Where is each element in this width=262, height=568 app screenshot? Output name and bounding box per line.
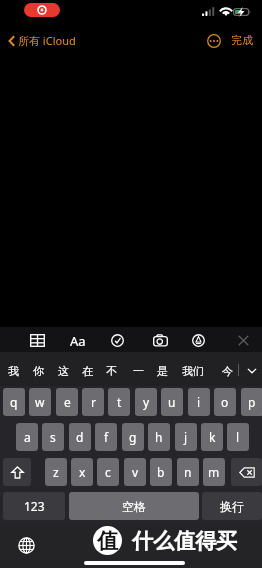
button[interactable]: Markup: [185, 329, 211, 352]
button[interactable]: t: [108, 388, 130, 416]
staticText: r: [91, 394, 96, 410]
staticText: 今: [222, 364, 233, 378]
button[interactable]: k: [201, 423, 223, 451]
button[interactable]: n: [177, 458, 199, 486]
button[interactable]: Recording: [24, 3, 60, 17]
button[interactable]: 我们: [180, 354, 205, 387]
staticText: 我们: [182, 364, 204, 378]
staticText: 换行: [220, 499, 244, 514]
button[interactable]: Backspace: [231, 458, 262, 486]
button[interactable]: 换行: [202, 492, 262, 520]
staticText: z: [53, 464, 59, 480]
button[interactable]: q: [3, 388, 25, 416]
staticText: c: [105, 464, 111, 480]
button[interactable]: f: [95, 423, 117, 451]
button[interactable]: g: [122, 423, 144, 451]
staticText: b: [157, 464, 165, 480]
button[interactable]: 完成: [229, 31, 255, 49]
staticText: 在: [82, 364, 93, 378]
button[interactable]: m: [203, 458, 225, 486]
staticText: u: [168, 394, 176, 410]
button[interactable]: Table: [24, 329, 50, 352]
staticText: p: [248, 394, 256, 410]
button[interactable]: h: [148, 423, 170, 451]
button[interactable]: 你: [27, 354, 49, 387]
staticText: v: [132, 464, 139, 480]
button[interactable]: x: [71, 458, 93, 486]
button[interactable]: 今: [216, 354, 238, 387]
staticText: f: [104, 429, 109, 445]
staticText: 所有 iCloud: [18, 33, 76, 48]
staticText: e: [64, 394, 71, 410]
button[interactable]: v: [124, 458, 146, 486]
button[interactable]: Checklist: [104, 329, 130, 352]
button[interactable]: Switch keyboard: [16, 535, 37, 556]
button[interactable]: o: [214, 388, 236, 416]
button[interactable]: i: [188, 388, 210, 416]
staticText: 我: [8, 364, 19, 378]
button[interactable]: j: [175, 423, 197, 451]
button[interactable]: s: [42, 423, 64, 451]
button[interactable]: a: [16, 423, 38, 451]
staticText: Aa: [70, 332, 86, 350]
staticText: 值: [97, 528, 118, 554]
button[interactable]: 所有 iCloud: [5, 31, 79, 50]
button[interactable]: Camera: [147, 329, 173, 352]
staticText: g: [129, 429, 137, 445]
button[interactable]: r: [82, 388, 104, 416]
staticText: 空格: [122, 499, 146, 514]
button[interactable]: Close: [230, 329, 256, 352]
button[interactable]: More options: [204, 31, 224, 51]
staticText: d: [76, 429, 84, 445]
button[interactable]: z: [45, 458, 67, 486]
staticText: 123: [24, 498, 45, 514]
staticText: t: [117, 394, 122, 410]
button[interactable]: Shift: [3, 458, 31, 486]
staticText: h: [155, 429, 163, 445]
button[interactable]: y: [135, 388, 157, 416]
button[interactable]: u: [161, 388, 183, 416]
button[interactable]: 是: [151, 354, 173, 387]
button[interactable]: Text format: [65, 329, 91, 352]
staticText: x: [79, 464, 86, 480]
staticText: q: [10, 394, 18, 410]
staticText: o: [221, 394, 229, 410]
button[interactable]: Expand candidates: [242, 354, 262, 387]
staticText: l: [236, 429, 240, 445]
button[interactable]: e: [56, 388, 78, 416]
staticText: k: [209, 429, 216, 445]
staticText: i: [197, 394, 201, 410]
staticText: 完成: [231, 33, 253, 47]
staticText: y: [143, 394, 150, 410]
button[interactable]: l: [227, 423, 249, 451]
staticText: 这: [58, 364, 69, 378]
staticText: a: [24, 429, 31, 445]
staticText: w: [35, 394, 45, 410]
staticText: 不: [106, 364, 117, 378]
button[interactable]: b: [150, 458, 172, 486]
button[interactable]: 一: [127, 354, 149, 387]
button[interactable]: 在: [76, 354, 98, 387]
staticText: s: [50, 429, 56, 445]
staticText: 是: [157, 364, 168, 378]
staticText: j: [184, 429, 188, 445]
button[interactable]: 我: [2, 354, 24, 387]
button[interactable]: 这: [52, 354, 74, 387]
staticText: 一: [133, 364, 144, 378]
staticText: n: [184, 464, 192, 480]
staticText: 你: [33, 364, 44, 378]
staticText: m: [208, 464, 220, 480]
button[interactable]: d: [69, 423, 91, 451]
button[interactable]: 123: [3, 492, 65, 520]
staticText: 什么值得买: [132, 528, 237, 554]
button[interactable]: p: [241, 388, 262, 416]
button[interactable]: w: [29, 388, 51, 416]
button[interactable]: 不: [100, 354, 122, 387]
button[interactable]: c: [97, 458, 119, 486]
button[interactable]: 空格: [69, 492, 199, 520]
